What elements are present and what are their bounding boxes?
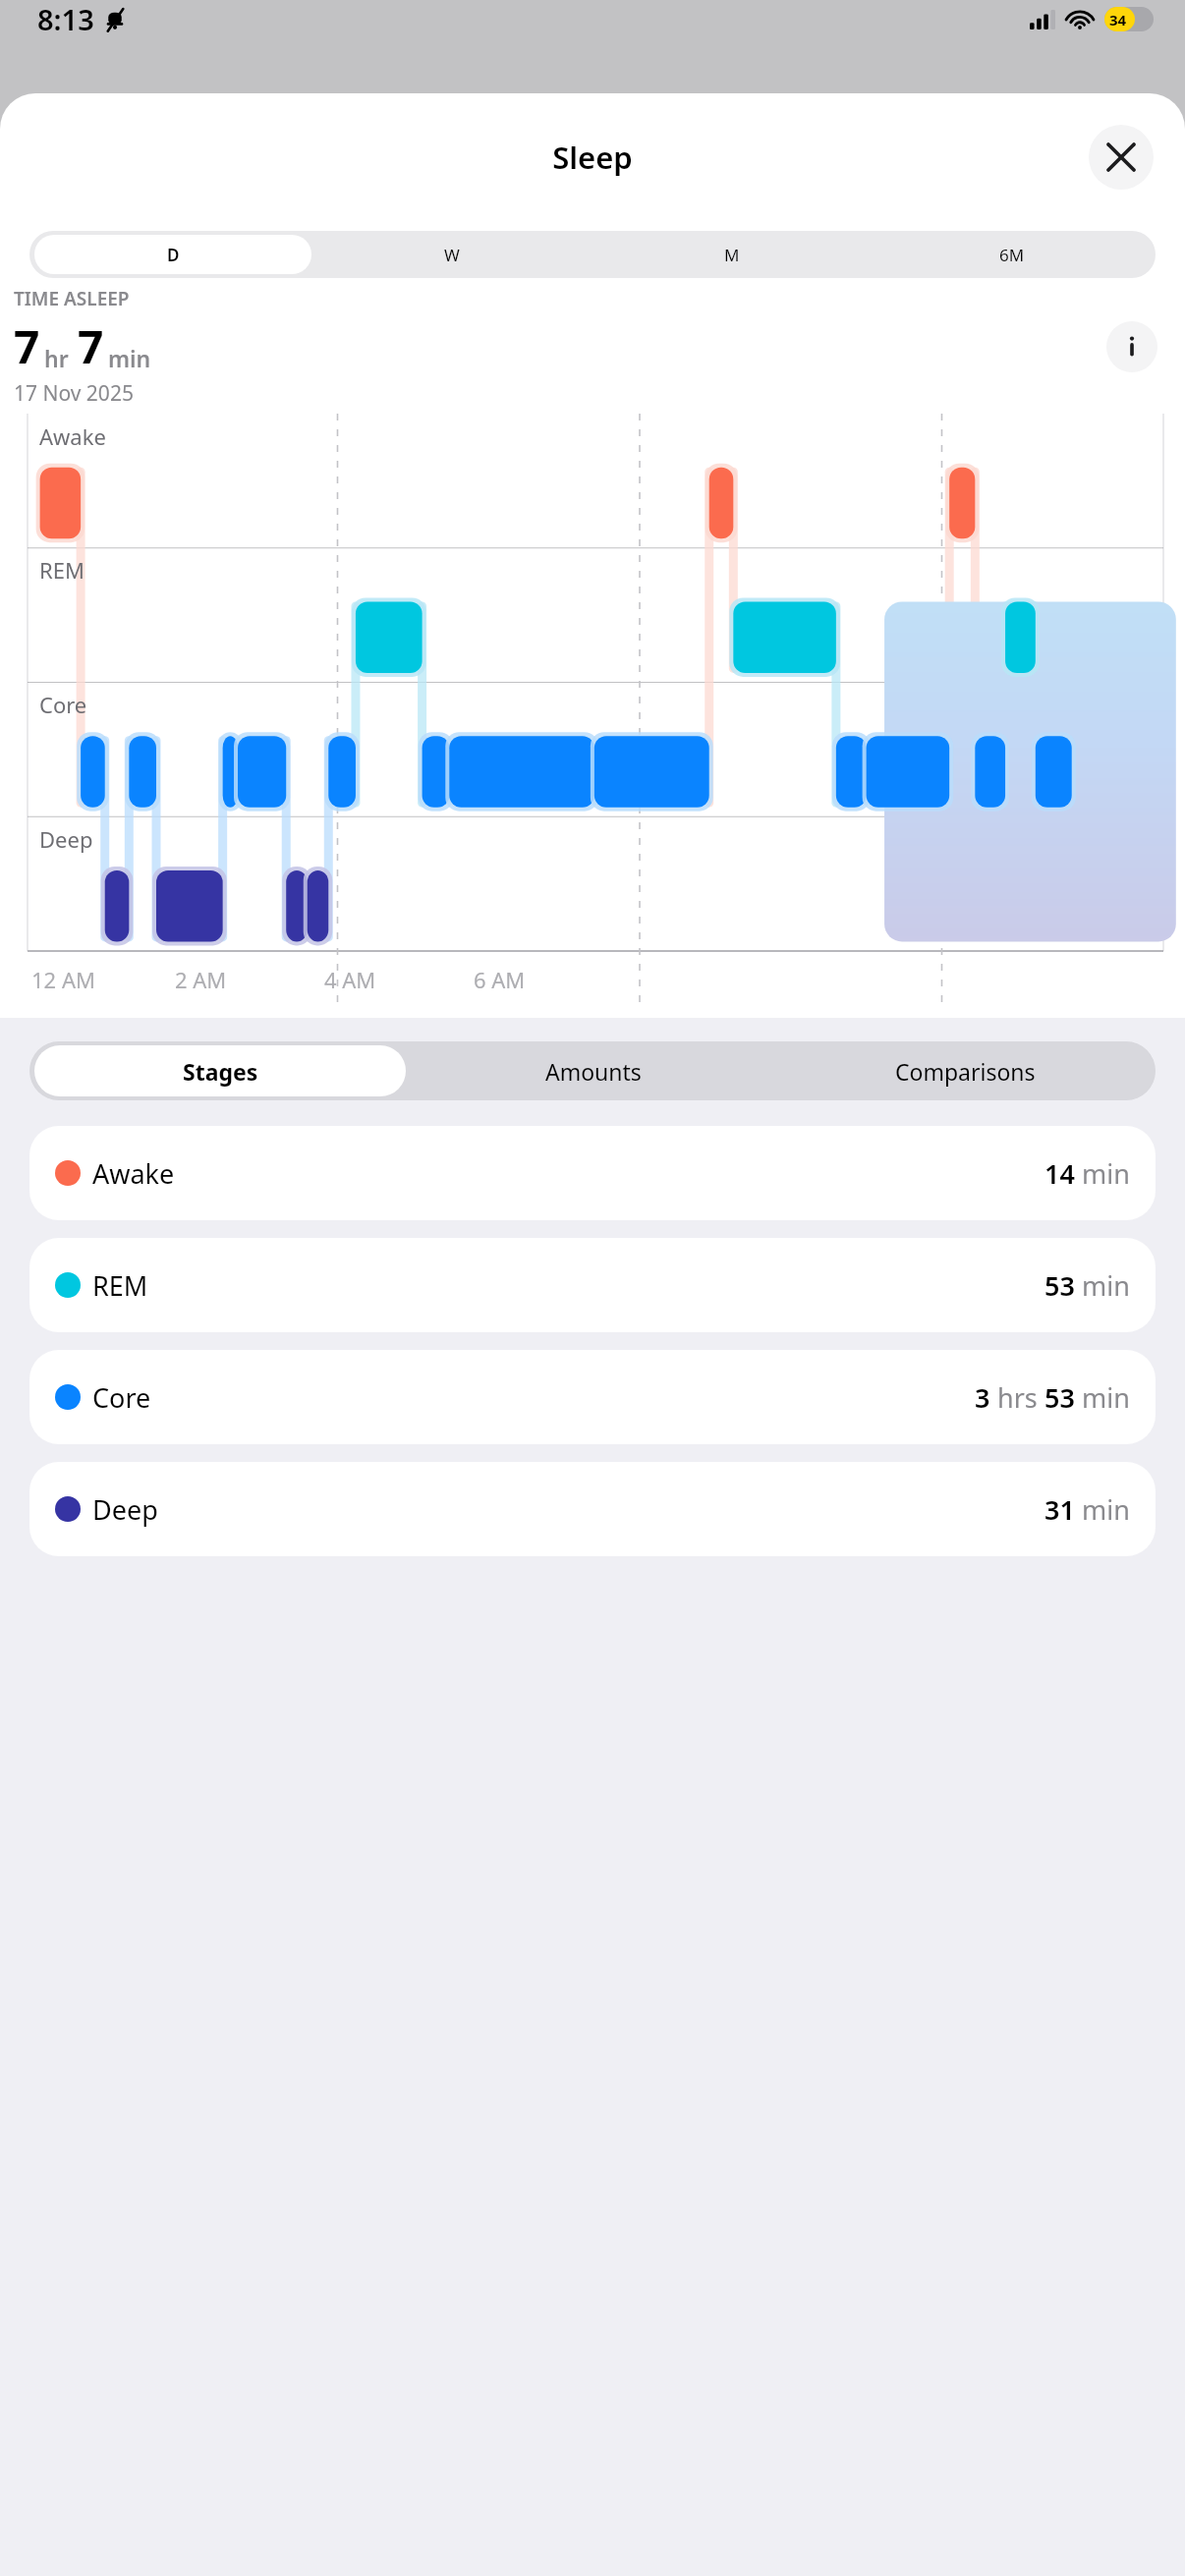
button[interactable]: Information (1106, 321, 1157, 372)
staticText: Deep (92, 1491, 158, 1528)
button[interactable]: Deep (29, 1462, 1156, 1556)
staticText: W (444, 244, 460, 266)
button[interactable]: M (592, 235, 871, 274)
staticText: REM (39, 555, 85, 585)
staticText: 17 Nov 2025 (14, 379, 134, 408)
staticText: 14 (1044, 1155, 1075, 1192)
staticText: min (1082, 1379, 1130, 1416)
staticText: Stages (183, 1056, 258, 1087)
staticText: Awake (39, 421, 106, 451)
staticText: 6 AM (474, 965, 526, 994)
staticText: 4 AM (324, 965, 376, 994)
staticText: 53 (1044, 1267, 1075, 1304)
staticText: Core (39, 690, 87, 719)
staticText: Awake (92, 1155, 175, 1192)
staticText: REM (92, 1267, 148, 1304)
staticText: 53 (1044, 1379, 1075, 1416)
staticText: min (1082, 1267, 1130, 1304)
staticText: M (724, 244, 740, 266)
staticText: 12 AM (31, 965, 95, 994)
staticText: TIME ASLEEP (14, 286, 130, 311)
button[interactable]: REM (29, 1238, 1156, 1332)
staticText: hrs (997, 1379, 1038, 1416)
staticText: 8:13 (37, 0, 94, 38)
button[interactable]: Stages (34, 1045, 406, 1096)
staticText: 7 (14, 315, 40, 377)
staticText: Sleep (552, 137, 633, 178)
staticText: Comparisons (895, 1056, 1036, 1087)
staticText: 2 AM (175, 965, 227, 994)
button[interactable]: Core (29, 1350, 1156, 1444)
staticText: 34 (1109, 10, 1127, 29)
staticText: 31 (1044, 1491, 1075, 1528)
staticText: 6M (999, 244, 1025, 266)
staticText: min (1082, 1491, 1130, 1528)
staticText: hr (44, 343, 69, 373)
staticText: 3 (975, 1379, 990, 1416)
button[interactable]: D (34, 235, 311, 274)
staticText: min (108, 343, 151, 373)
staticText: Deep (39, 824, 93, 854)
button[interactable]: 6M (873, 235, 1151, 274)
staticText: Core (92, 1379, 151, 1416)
button[interactable]: Close (1089, 125, 1154, 190)
button[interactable]: Amounts (408, 1045, 778, 1096)
staticText: 7 (78, 315, 104, 377)
button[interactable]: Comparisons (780, 1045, 1151, 1096)
staticText: min (1082, 1155, 1130, 1192)
button[interactable]: W (313, 235, 591, 274)
staticText: D (167, 244, 180, 266)
staticText: Amounts (545, 1056, 642, 1087)
button[interactable]: Awake (29, 1126, 1156, 1220)
